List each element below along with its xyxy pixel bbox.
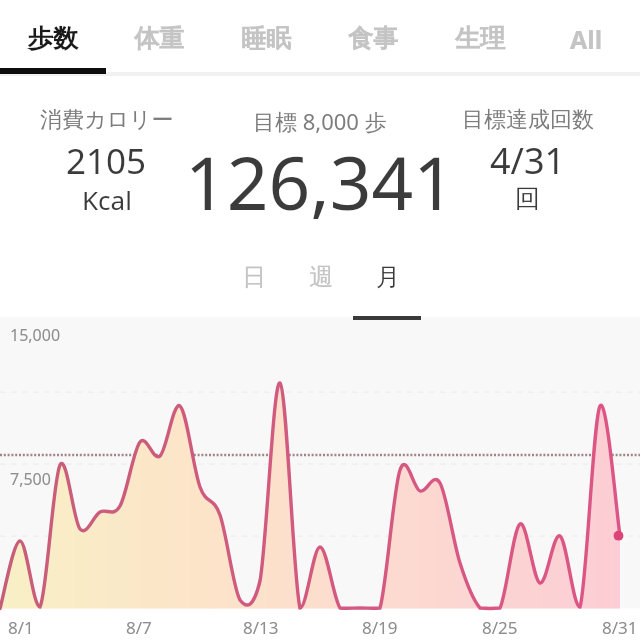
staticText: Kcal — [82, 182, 132, 217]
button[interactable]: All — [533, 0, 640, 71]
staticText: 体重 — [134, 23, 184, 54]
staticText: 8/13 — [243, 616, 279, 639]
staticText: 8/31 — [602, 616, 638, 639]
button[interactable]: 睡眠 — [212, 0, 319, 71]
button[interactable]: 生理 — [426, 0, 533, 71]
staticText: 消費カロリー — [40, 106, 174, 134]
staticText: 8/25 — [482, 616, 518, 639]
button[interactable]: 歩数 — [0, 0, 106, 71]
button[interactable]: 日 — [220, 252, 287, 302]
staticText: 日 — [242, 262, 266, 292]
staticText: 目標達成回数 — [462, 106, 594, 134]
staticText: 15,000 — [10, 324, 61, 346]
button[interactable]: 体重 — [106, 0, 212, 71]
staticText: 月 — [376, 262, 400, 292]
staticText: 食事 — [348, 23, 398, 54]
button[interactable]: 週 — [287, 252, 354, 302]
staticText: 週 — [309, 262, 333, 292]
staticText: 目標 8,000 歩 — [253, 106, 387, 136]
staticText: All — [570, 22, 603, 56]
staticText: 生理 — [455, 23, 505, 54]
staticText: 8/1 — [8, 616, 34, 639]
staticText: 4/31 — [490, 136, 566, 185]
staticText: 8/19 — [362, 616, 398, 639]
button[interactable]: 食事 — [319, 0, 426, 71]
staticText: 7,500 — [10, 468, 51, 490]
staticText: 8/7 — [126, 616, 152, 639]
button[interactable]: 月 — [354, 252, 421, 302]
staticText: 回 — [515, 183, 540, 214]
staticText: 睡眠 — [241, 23, 291, 54]
staticText: 歩数 — [28, 23, 78, 54]
staticText: 2105 — [66, 137, 147, 185]
staticText: 126,341 — [185, 132, 456, 231]
